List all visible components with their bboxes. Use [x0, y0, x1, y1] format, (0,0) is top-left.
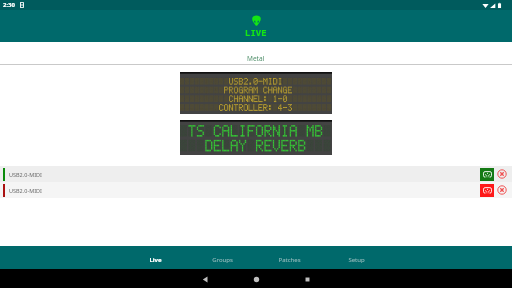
button[interactable]: Live: [122, 246, 189, 269]
button[interactable]: Remove: [496, 184, 508, 196]
staticText: Groups: [212, 256, 233, 264]
button[interactable]: Patches: [256, 246, 323, 269]
staticText: LIVE: [245, 26, 267, 38]
staticText: USB2.0-MIDI: [9, 187, 42, 194]
staticText: Patches: [278, 256, 301, 264]
button[interactable]: MIDI port: [480, 184, 494, 197]
staticText: 2:30: [3, 1, 15, 9]
button[interactable]: Live: [245, 15, 267, 38]
button[interactable]: Remove: [496, 168, 508, 180]
staticText: Setup: [348, 256, 365, 264]
button[interactable]: Setup: [323, 246, 390, 269]
button[interactable]: USB2.0-MIDI: [0, 166, 512, 182]
button[interactable]: Current patch display: [180, 120, 332, 155]
button[interactable]: MIDI port: [480, 168, 494, 181]
button[interactable]: Recent apps: [299, 271, 315, 287]
staticText: USB2.0-MIDI: [9, 171, 42, 178]
staticText: Metal: [247, 54, 265, 63]
button[interactable]: Home: [248, 271, 264, 287]
button[interactable]: Back: [197, 271, 213, 287]
button[interactable]: MIDI message display: [180, 72, 332, 114]
button[interactable]: USB2.0-MIDI: [0, 182, 512, 198]
button[interactable]: Groups: [189, 246, 256, 269]
button[interactable]: Metal: [0, 42, 512, 64]
staticText: Live: [149, 256, 162, 264]
